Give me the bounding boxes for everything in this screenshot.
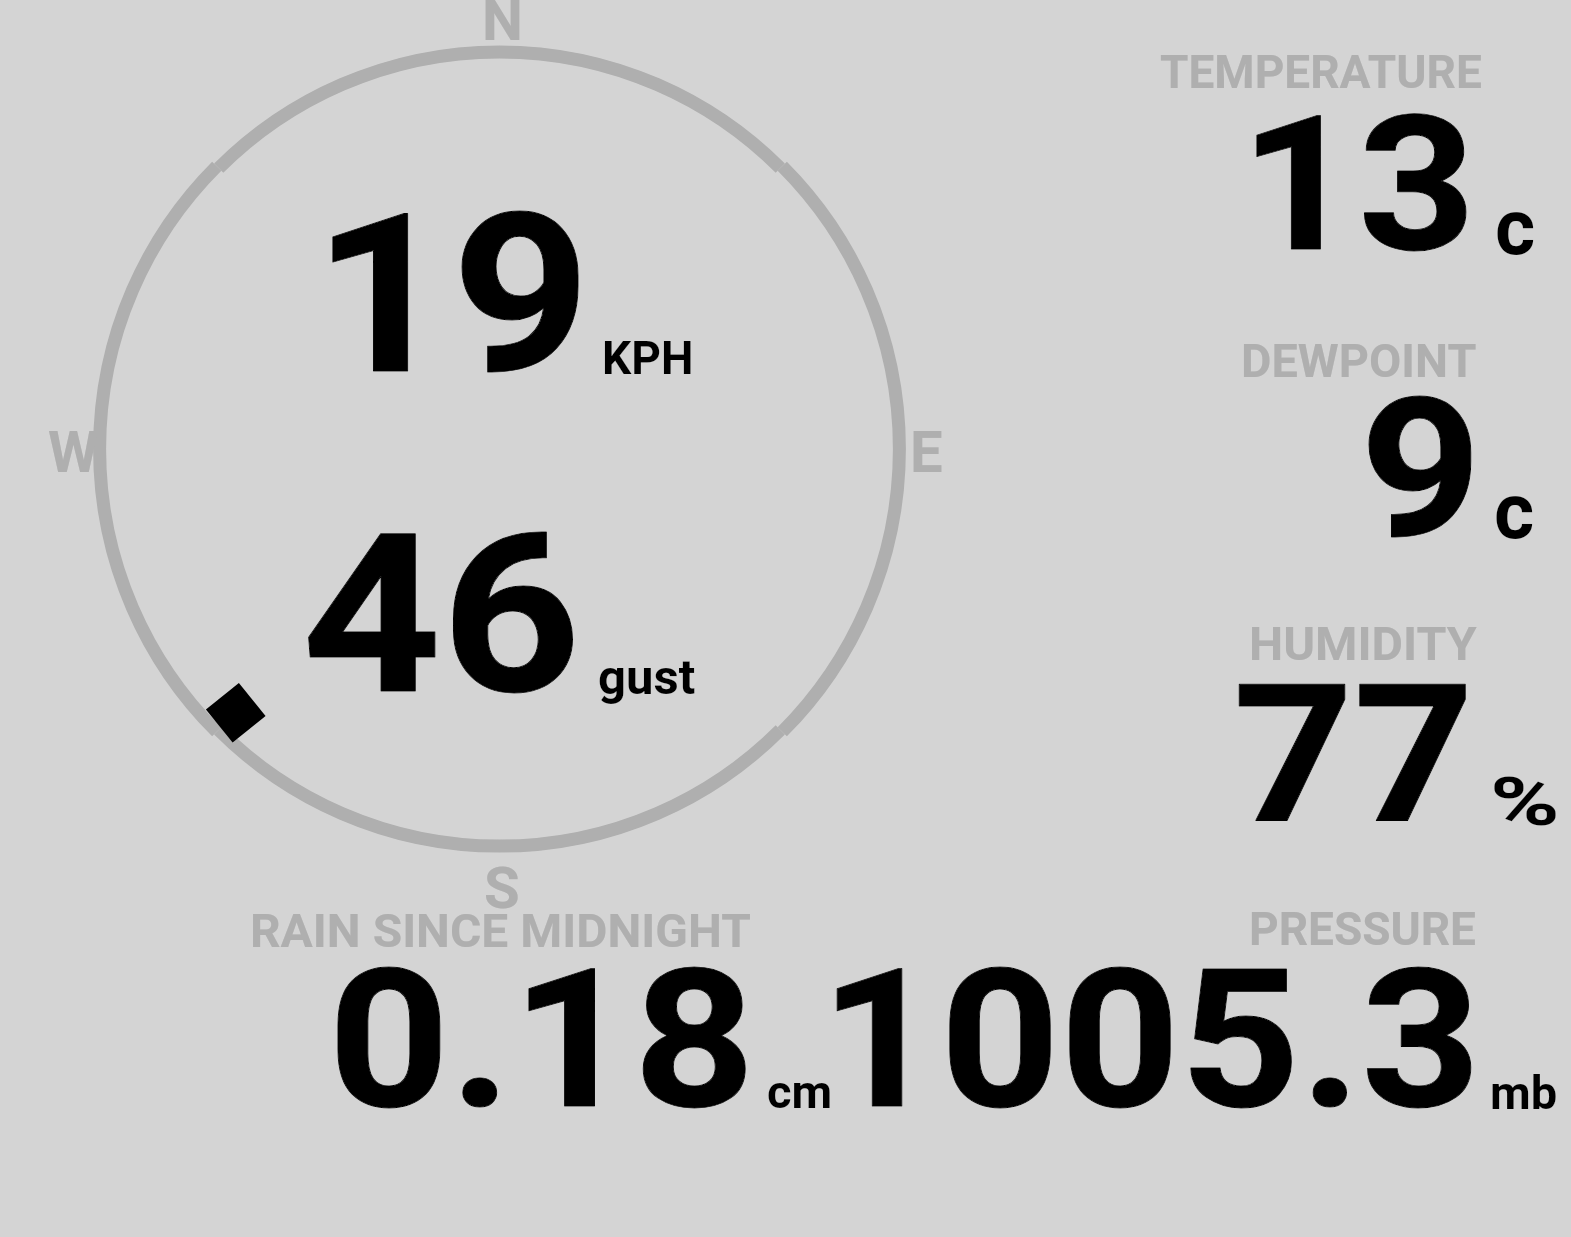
staticText: 0.18 <box>328 927 756 1153</box>
button[interactable]: Rain since midnight 0.18 cm <box>245 900 845 1130</box>
staticText: % <box>1490 764 1560 841</box>
staticText: c <box>1494 467 1535 557</box>
staticText: TEMPERATURE <box>1160 45 1482 99</box>
staticText: gust <box>598 649 696 706</box>
staticText: KPH <box>602 331 694 385</box>
staticText: 1005.3 <box>820 927 1481 1153</box>
staticText: E <box>910 418 943 486</box>
button[interactable]: Pressure 1005.3 mb <box>850 900 1560 1130</box>
staticText: S <box>484 854 520 922</box>
staticText: 0.18 <box>328 927 756 1153</box>
staticText: N <box>482 0 523 54</box>
staticText: PRESSURE <box>1249 902 1476 956</box>
button[interactable]: Dewpoint 9 degrees celsius <box>1150 330 1560 560</box>
staticText: 19 <box>313 167 591 425</box>
staticText: 46 <box>302 486 581 745</box>
button[interactable]: Temperature 13 degrees celsius <box>1150 40 1560 270</box>
staticText: DEWPOINT <box>1241 334 1477 388</box>
staticText: mb <box>1490 1065 1558 1120</box>
staticText: 1005.3 <box>820 927 1481 1153</box>
staticText: HUMIDITY <box>1249 617 1477 671</box>
staticText: 13 <box>1240 76 1476 295</box>
staticText: 19 <box>313 167 591 425</box>
staticText: cm <box>767 1064 833 1119</box>
staticText: 9 <box>1360 357 1482 583</box>
staticText: 77 <box>1233 643 1475 867</box>
staticText: 13 <box>1240 76 1476 295</box>
staticText: RAIN SINCE MIDNIGHT <box>250 904 751 958</box>
staticText: W <box>48 418 99 486</box>
staticText: 46 <box>302 486 581 745</box>
button[interactable]: Humidity 77 percent <box>1150 610 1560 840</box>
staticText: 77 <box>1233 643 1475 867</box>
button[interactable]: Wind: 19 KPH, gusting 46, from the south… <box>100 50 900 850</box>
staticText: 9 <box>1360 357 1482 583</box>
staticText: c <box>1495 183 1536 273</box>
